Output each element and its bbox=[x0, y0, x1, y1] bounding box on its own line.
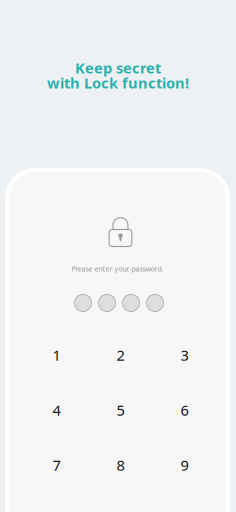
staticText: 8 bbox=[116, 455, 124, 475]
button[interactable]: 7 bbox=[24, 437, 88, 492]
button[interactable]: 3 bbox=[152, 327, 216, 382]
staticText: 4 bbox=[52, 400, 60, 420]
button[interactable]: 9 bbox=[152, 437, 216, 492]
button[interactable]: 8 bbox=[88, 437, 152, 492]
staticText: 9 bbox=[180, 455, 188, 475]
staticText: 5 bbox=[116, 400, 124, 420]
button[interactable]: 2 bbox=[88, 327, 152, 382]
button[interactable]: 4 bbox=[24, 382, 88, 437]
staticText: 6 bbox=[180, 400, 188, 420]
button[interactable]: 5 bbox=[88, 382, 152, 437]
staticText: 1 bbox=[52, 345, 60, 365]
staticText: 2 bbox=[116, 345, 124, 365]
staticText: 7 bbox=[52, 455, 60, 475]
button[interactable]: 1 bbox=[24, 327, 88, 382]
staticText: Keep secret bbox=[75, 58, 161, 77]
button[interactable]: 6 bbox=[152, 382, 216, 437]
staticText: 3 bbox=[180, 345, 188, 365]
staticText: Please enter your password. bbox=[71, 264, 163, 273]
staticText: with Lock function! bbox=[47, 73, 189, 92]
